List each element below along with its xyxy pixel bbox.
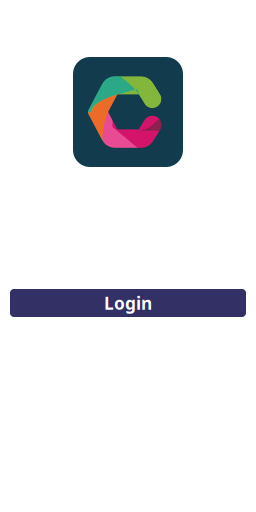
button[interactable]: Login [10,289,246,317]
staticText: Login [104,291,152,314]
